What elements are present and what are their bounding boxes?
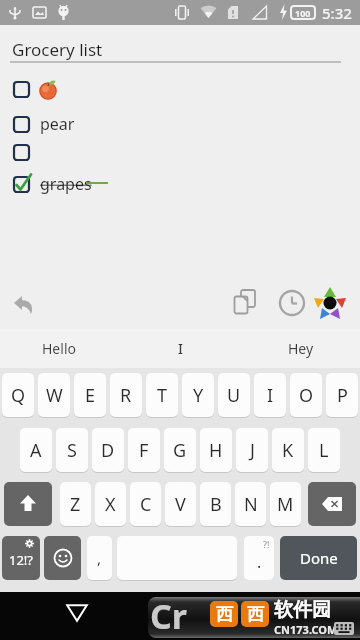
staticText: B (210, 492, 222, 517)
button[interactable]: C (130, 482, 161, 526)
staticText: 西 (247, 604, 264, 625)
button[interactable]: L (308, 428, 340, 472)
staticText: K (282, 438, 294, 463)
staticText: . (257, 551, 262, 573)
button[interactable] (4, 482, 52, 526)
staticText: CN173.COM (274, 622, 338, 637)
button[interactable]: Y (182, 373, 214, 417)
staticText: N (244, 492, 258, 517)
button[interactable]: P (326, 373, 358, 417)
staticText: Y (193, 383, 204, 408)
staticText: 软件园 (274, 598, 331, 622)
button[interactable]: I (178, 339, 183, 358)
staticText: Q (11, 383, 26, 408)
button[interactable] (308, 482, 356, 526)
staticText: O (299, 383, 314, 408)
button[interactable] (278, 289, 306, 317)
staticText: 5:32 (322, 3, 352, 23)
button[interactable]: X (95, 482, 126, 526)
button[interactable]: I (254, 373, 286, 417)
button[interactable]: Q (2, 373, 34, 417)
staticText: S (67, 438, 77, 463)
staticText: G (173, 438, 187, 463)
staticText: J (250, 438, 255, 463)
button[interactable]: N (235, 482, 266, 526)
button[interactable]: H (200, 428, 232, 472)
button[interactable]: D (92, 428, 124, 472)
button[interactable]: grapes (13, 173, 92, 195)
staticText: U (227, 383, 241, 408)
button[interactable]: J (236, 428, 268, 472)
staticText: grapes (40, 173, 92, 195)
staticText: ?! (263, 538, 270, 550)
staticText: I (267, 383, 274, 408)
button[interactable]: B (200, 482, 231, 526)
staticText: Grocery list (12, 38, 103, 61)
staticText: T (157, 383, 168, 408)
button[interactable]: V (165, 482, 196, 526)
staticText: Cr (150, 597, 188, 634)
staticText: W (46, 383, 63, 408)
staticText: R (120, 383, 132, 408)
button[interactable]: O (290, 373, 322, 417)
button[interactable]: S (56, 428, 88, 472)
button[interactable]: Hey (288, 339, 314, 358)
staticText: Z (70, 492, 81, 517)
button[interactable] (13, 144, 30, 161)
button[interactable]: pear (13, 113, 75, 135)
button[interactable]: , (87, 536, 112, 580)
staticText: D (101, 438, 115, 463)
button[interactable]: G (164, 428, 196, 472)
staticText: , (97, 548, 102, 568)
staticText: P (337, 383, 348, 408)
button[interactable]: W (38, 373, 70, 417)
button[interactable]: K (272, 428, 304, 472)
staticText: H (209, 438, 223, 463)
button[interactable]: Z (60, 482, 91, 526)
staticText: 12!? (9, 551, 34, 569)
staticText: L (319, 438, 329, 463)
button[interactable]: 12!? (2, 536, 40, 580)
button[interactable]: A (20, 428, 52, 472)
staticText: F (139, 438, 149, 463)
button[interactable] (14, 296, 34, 314)
staticText: 100 (295, 7, 311, 19)
button[interactable] (232, 289, 260, 317)
staticText: V (175, 492, 186, 517)
staticText: X (105, 492, 116, 517)
button[interactable] (312, 286, 348, 322)
staticText: C (140, 492, 152, 517)
button[interactable]: F (128, 428, 160, 472)
button[interactable]: M (270, 482, 301, 526)
staticText: Done (300, 548, 338, 568)
button[interactable]: T (146, 373, 178, 417)
staticText: pear (40, 113, 75, 135)
button[interactable]: R (110, 373, 142, 417)
staticText: 西 (216, 604, 233, 625)
button[interactable]: U (218, 373, 250, 417)
staticText: M (277, 492, 294, 517)
button[interactable] (66, 604, 88, 622)
button[interactable]: ?! (244, 536, 274, 580)
button[interactable]: Hello (42, 339, 76, 358)
button[interactable] (13, 81, 30, 98)
button[interactable]: E (74, 373, 106, 417)
button[interactable]: Done (280, 536, 357, 580)
staticText: E (85, 383, 96, 408)
staticText: A (30, 438, 42, 463)
button[interactable] (44, 536, 81, 580)
